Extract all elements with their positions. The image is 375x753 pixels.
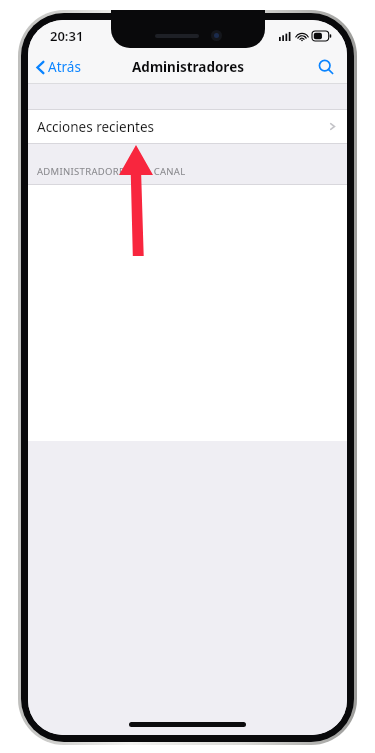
button[interactable]: Acciones recientes xyxy=(28,109,347,144)
staticText: ADMINISTRADORES DEL CANAL xyxy=(37,165,186,178)
staticText: Administradores xyxy=(132,58,244,76)
staticText: Acciones recientes xyxy=(37,118,154,136)
button[interactable]: Buscar xyxy=(315,56,337,78)
button[interactable]: Atrás xyxy=(34,54,83,80)
staticText: 20:31 xyxy=(50,27,84,45)
staticText: Atrás xyxy=(48,58,81,76)
